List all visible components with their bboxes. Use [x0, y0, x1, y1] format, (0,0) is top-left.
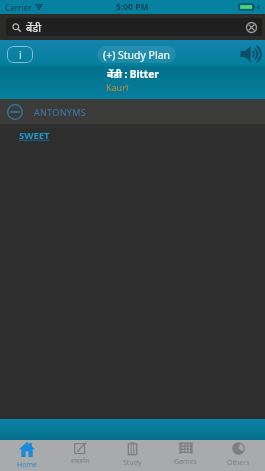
button[interactable]: Others	[212, 440, 265, 471]
staticText: बेंडी : Bitter	[107, 67, 159, 81]
staticText: बेंडी	[26, 20, 42, 35]
staticText: शब्दकोश	[71, 457, 89, 464]
staticText: Study	[123, 458, 142, 468]
button[interactable]: SWEET	[19, 129, 50, 142]
staticText: SWEET	[19, 129, 50, 142]
staticText: Kaurī	[106, 81, 129, 93]
staticText: (+) Study Plan	[103, 48, 171, 62]
staticText: Home	[17, 460, 37, 470]
button[interactable]: (+) Study Plan	[97, 46, 176, 63]
button[interactable]: Study	[106, 440, 159, 471]
staticText: Carrier	[5, 2, 32, 13]
button[interactable]: शब्दकोश	[53, 440, 106, 471]
button[interactable]: बेंडी	[6, 18, 262, 36]
staticText: Games	[174, 457, 197, 467]
button[interactable]: Clear	[246, 22, 257, 33]
staticText: Others	[227, 458, 250, 468]
staticText: ANTONYMS	[34, 106, 86, 118]
button[interactable]: Games	[159, 440, 212, 471]
button[interactable]: ANTONYMS	[0, 99, 265, 124]
button[interactable]: Home	[0, 440, 53, 471]
staticText: i	[19, 47, 22, 62]
button[interactable]: Pronounce	[240, 45, 262, 63]
staticText: 5:00 PM	[116, 1, 149, 13]
button[interactable]: Info	[7, 46, 33, 63]
